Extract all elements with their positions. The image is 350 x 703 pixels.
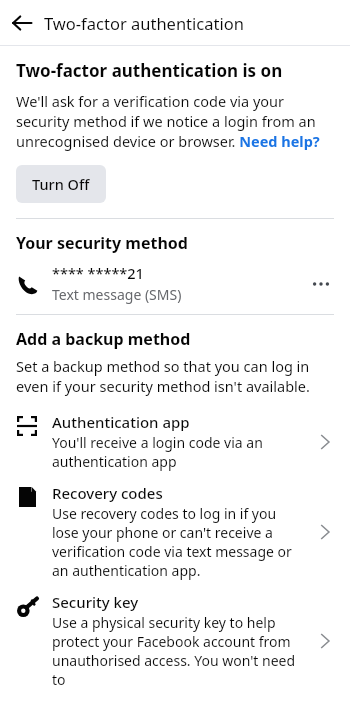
staticText: Add a backup method — [16, 328, 191, 350]
staticText: Authentication app — [52, 412, 190, 432]
button[interactable]: Recovery codes — [0, 477, 350, 586]
staticText: We'll ask for a verification code via yo… — [16, 91, 334, 151]
button[interactable]: Authentication app — [0, 406, 350, 477]
staticText: Security key — [52, 592, 139, 612]
button[interactable]: **** *****21 — [0, 263, 350, 304]
staticText: Set a backup method so that you can log … — [16, 356, 334, 396]
staticText: Two-factor authentication is on — [16, 59, 283, 82]
button[interactable]: Turn Off — [16, 165, 106, 203]
staticText: Turn Off — [32, 174, 90, 194]
button[interactable]: More options — [304, 267, 338, 301]
staticText: Recovery codes — [52, 483, 163, 503]
button[interactable]: Back — [0, 1, 44, 45]
staticText: Use recovery codes to log in if you lose… — [52, 504, 304, 580]
staticText: Text message (SMS) — [52, 285, 182, 304]
staticText: Use a physical security key to help prot… — [52, 613, 304, 689]
staticText: **** *****21 — [52, 263, 144, 283]
staticText: Two-factor authentication — [44, 12, 244, 34]
button[interactable]: Security key — [0, 586, 350, 695]
staticText: Your security method — [16, 232, 188, 254]
staticText: You'll receive a login code via an authe… — [52, 433, 304, 471]
